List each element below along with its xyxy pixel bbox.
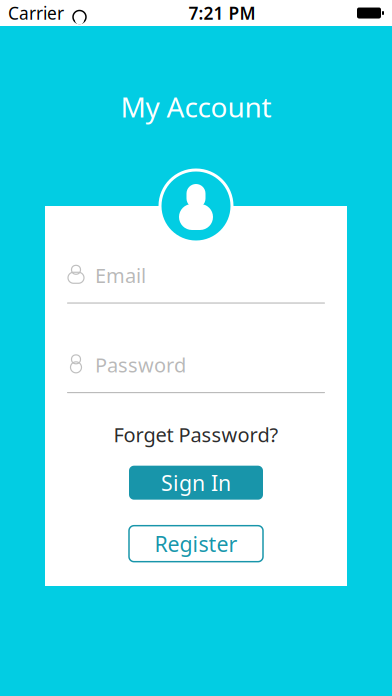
button[interactable]: Forget Password?	[103, 415, 288, 454]
button[interactable]: Register	[129, 526, 263, 562]
staticText: Carrier	[8, 1, 64, 24]
staticText: Sign In	[161, 468, 231, 497]
staticText: My Account	[120, 88, 271, 125]
button[interactable]: Sign In	[129, 466, 263, 500]
staticText	[64, 3, 72, 23]
staticText: Register	[154, 529, 237, 558]
staticText: 7:21 PM	[188, 1, 255, 24]
staticText: Password	[95, 352, 186, 378]
staticText: Email	[95, 262, 146, 289]
staticText: Forget Password?	[113, 421, 278, 448]
